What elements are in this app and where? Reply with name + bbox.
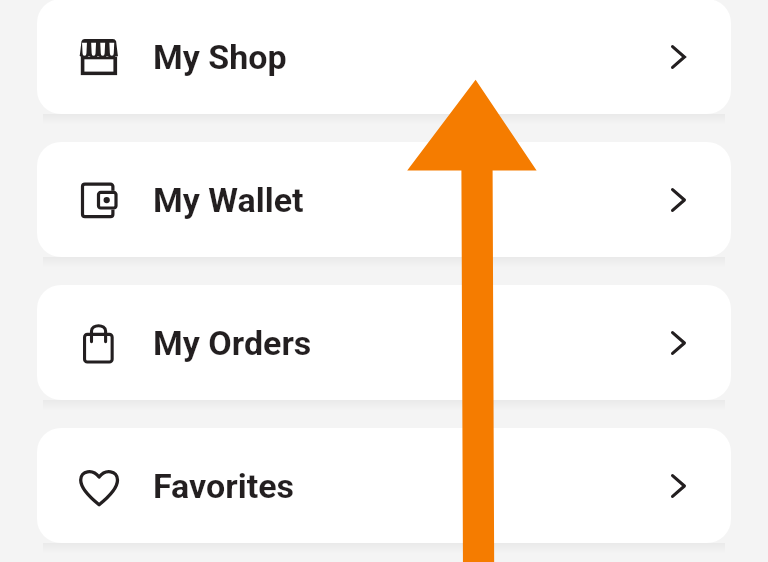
other: Open My Orders <box>671 331 686 355</box>
staticText: My Shop <box>153 37 287 77</box>
button[interactable]: Favorites <box>37 428 731 543</box>
other: Open My Wallet <box>671 188 686 212</box>
button[interactable]: My Shop <box>37 0 731 114</box>
other: Open My Shop <box>671 45 686 69</box>
staticText: Favorites <box>153 466 294 506</box>
button[interactable]: My Orders <box>37 285 731 400</box>
button[interactable]: My Wallet <box>37 142 731 257</box>
staticText: My Wallet <box>153 180 304 220</box>
staticText: My Orders <box>153 323 312 363</box>
other: Open Favorites <box>671 474 686 498</box>
